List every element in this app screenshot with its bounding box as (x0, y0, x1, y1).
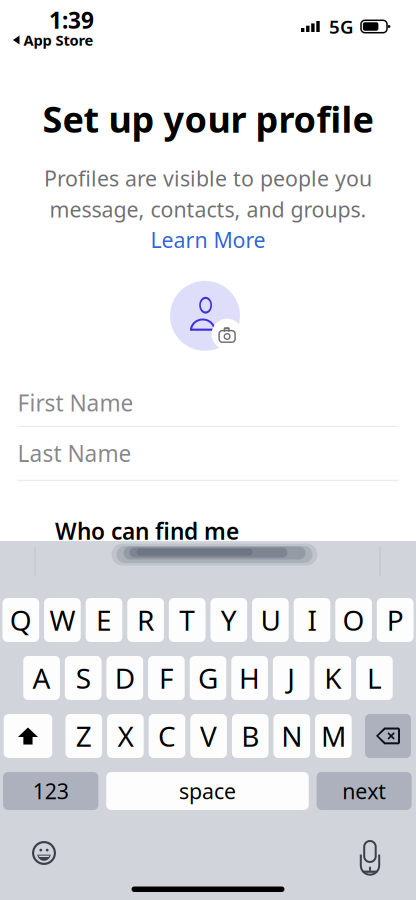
button[interactable]: Z (65, 714, 102, 758)
button[interactable]: H (231, 656, 268, 700)
button[interactable]: Last Name (17, 427, 398, 480)
staticText: Q (10, 601, 32, 639)
button[interactable]: next (317, 772, 412, 810)
staticText: L (367, 659, 382, 697)
staticText: X (117, 717, 133, 755)
button[interactable]: Shift (4, 714, 52, 758)
staticText: Who can find me (55, 516, 239, 546)
staticText: A (33, 659, 51, 697)
button[interactable]: R (127, 598, 164, 642)
button[interactable]: S (65, 656, 101, 700)
button[interactable]: Q (2, 598, 39, 642)
button[interactable]: F (148, 656, 185, 700)
staticText: Set up your profile (42, 95, 373, 143)
staticText: Profiles are visible to people you (44, 164, 372, 192)
button[interactable]: J (273, 656, 309, 700)
button[interactable]: C (149, 714, 185, 758)
button[interactable]: W (44, 598, 81, 642)
staticText: E (96, 601, 112, 639)
button[interactable]: N (273, 714, 310, 758)
staticText: W (49, 601, 75, 639)
staticText: First Name (17, 388, 133, 418)
staticText: message, contacts, and groups. (49, 195, 366, 223)
button[interactable]: U (252, 598, 289, 642)
button[interactable]: G (190, 656, 226, 700)
button[interactable]: Back to App Store (13, 32, 93, 48)
button[interactable]: M (315, 714, 352, 758)
staticText: next (342, 777, 386, 805)
staticText: R (137, 601, 154, 639)
staticText: T (179, 601, 195, 639)
staticText: F (159, 659, 174, 697)
button[interactable]: Emoji keyboard (32, 841, 56, 865)
button[interactable]: L (356, 656, 393, 700)
button[interactable]: First Name (17, 380, 398, 426)
staticText: space (179, 777, 236, 805)
staticText: 123 (33, 777, 69, 805)
staticText: D (115, 659, 135, 697)
staticText: V (200, 717, 217, 755)
staticText: K (324, 659, 341, 697)
button[interactable]: Y (210, 598, 247, 642)
button[interactable]: V (190, 714, 227, 758)
button[interactable]: K (314, 656, 351, 700)
button[interactable]: T (169, 598, 205, 642)
button[interactable]: Change profile photo (170, 281, 246, 351)
button[interactable]: B (232, 714, 268, 758)
button[interactable]: O (335, 598, 372, 642)
button[interactable]: Dictation (359, 841, 381, 873)
staticText: Last Name (17, 438, 131, 468)
button[interactable]: X (107, 714, 144, 758)
button[interactable]: Learn More (150, 225, 265, 255)
staticText: 1:39 (49, 5, 94, 35)
staticText: G (198, 659, 218, 697)
button[interactable]: space (106, 772, 309, 810)
button[interactable]: 123 (3, 772, 98, 810)
button[interactable]: A (23, 656, 60, 700)
staticText: M (321, 717, 346, 755)
staticText: Y (221, 601, 237, 639)
button[interactable]: D (106, 656, 143, 700)
staticText: N (281, 717, 302, 755)
staticText: Z (76, 717, 92, 755)
staticText: 5G (329, 14, 354, 39)
button[interactable]: E (86, 598, 122, 642)
staticText: B (241, 717, 259, 755)
button[interactable]: Delete (365, 714, 411, 758)
staticText: O (343, 601, 365, 639)
staticText: P (387, 601, 404, 639)
staticText: Learn More (150, 226, 265, 254)
staticText: C (158, 717, 176, 755)
staticText: S (76, 659, 91, 697)
button[interactable]: P (377, 598, 413, 642)
staticText: App Store (23, 30, 93, 50)
staticText: J (287, 659, 295, 697)
button[interactable]: I (294, 598, 330, 642)
staticText: H (239, 659, 260, 697)
staticText: I (307, 601, 316, 639)
staticText: U (260, 601, 280, 639)
